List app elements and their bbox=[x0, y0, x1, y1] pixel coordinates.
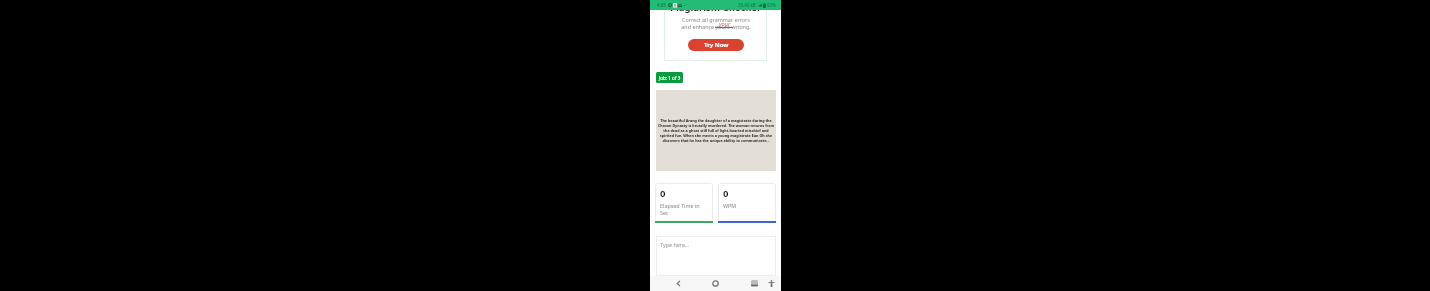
button[interactable]: Type here... bbox=[656, 236, 776, 276]
staticText: Plagiarism Checker bbox=[670, 1, 762, 14]
staticText: Elapsed Time in Sec bbox=[660, 202, 705, 217]
button[interactable]: Home bbox=[705, 276, 725, 291]
staticText: 0 bbox=[723, 187, 729, 200]
staticText: Type here... bbox=[660, 241, 690, 248]
button[interactable]: 0 bbox=[655, 183, 713, 223]
button[interactable]: Try Now bbox=[688, 39, 744, 51]
button[interactable]: Plagiarism Checker bbox=[664, 0, 767, 61]
staticText: Try Now bbox=[704, 41, 729, 49]
staticText: Job: 1 of 3 bbox=[659, 75, 681, 81]
staticText: 4:05 bbox=[657, 2, 666, 8]
staticText: Correct all grammar errors and enhance y… bbox=[681, 16, 751, 31]
staticText: The beautiful Arang the daughter of a ma… bbox=[657, 118, 775, 143]
button[interactable]: Accessibility bbox=[763, 276, 779, 291]
staticText: WPM bbox=[723, 202, 737, 209]
staticText: 35.40 kB bbox=[738, 2, 756, 8]
button[interactable]: Back bbox=[668, 276, 688, 291]
button[interactable]: Job: 1 of 3 bbox=[656, 72, 683, 83]
staticText: 92% bbox=[767, 2, 776, 8]
button[interactable]: 0 bbox=[718, 183, 776, 223]
staticText: 0 bbox=[660, 187, 666, 200]
staticText: your bbox=[719, 20, 731, 28]
button[interactable]: Recent apps bbox=[744, 276, 764, 291]
